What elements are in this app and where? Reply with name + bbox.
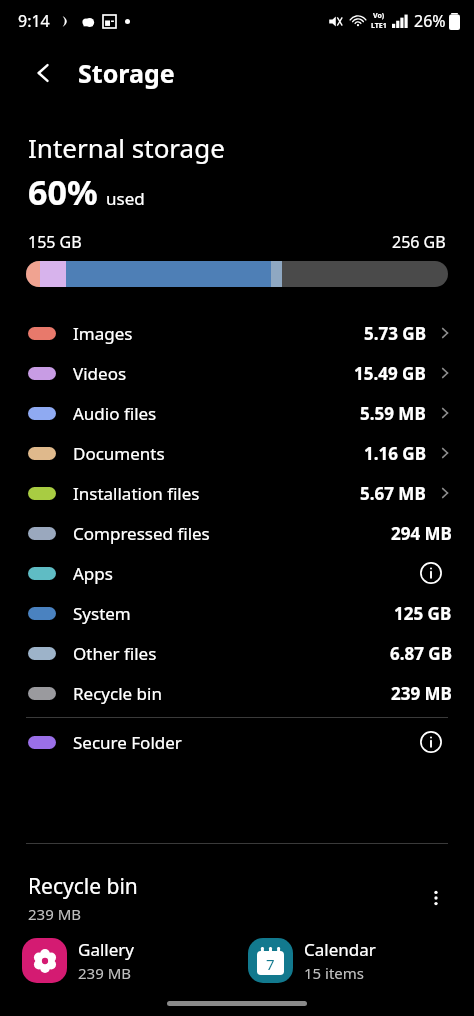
staticText: Installation files bbox=[73, 482, 200, 505]
button[interactable]: Other files bbox=[0, 633, 474, 673]
staticText: Images bbox=[73, 322, 133, 345]
staticText: 239 MB bbox=[391, 682, 452, 705]
button[interactable]: Installation files bbox=[0, 473, 474, 513]
button[interactable]: 7 bbox=[248, 938, 474, 983]
staticText: 60% bbox=[28, 169, 98, 215]
staticText: Other files bbox=[73, 642, 157, 665]
staticText: System bbox=[73, 602, 131, 625]
staticText: 256 GB bbox=[392, 231, 446, 253]
button[interactable]: Documents bbox=[0, 433, 474, 473]
staticText: Calendar bbox=[304, 938, 376, 961]
staticText: 6.87 GB bbox=[390, 642, 452, 665]
staticText: 9:14 bbox=[18, 10, 50, 32]
staticText: 26% bbox=[414, 10, 446, 32]
button[interactable]: Images bbox=[0, 313, 474, 353]
staticText: LTE1 bbox=[371, 21, 387, 31]
staticText: 5.67 MB bbox=[360, 482, 426, 505]
button[interactable]: Apps bbox=[0, 553, 474, 593]
staticText: 15.49 GB bbox=[354, 362, 426, 385]
staticText: Storage bbox=[78, 56, 175, 90]
button[interactable]: Recycle bin bbox=[0, 673, 474, 713]
button[interactable]: Recycle bin bbox=[0, 872, 474, 924]
staticText: 155 GB bbox=[28, 231, 82, 253]
staticText: used bbox=[106, 187, 145, 210]
staticText: Recycle bin bbox=[28, 872, 138, 901]
staticText: Apps bbox=[73, 562, 113, 585]
staticText: Internal storage bbox=[28, 130, 225, 165]
button[interactable]: More options bbox=[416, 878, 456, 918]
button[interactable]: Compressed files bbox=[0, 513, 474, 553]
staticText: 1.16 GB bbox=[364, 442, 426, 465]
button[interactable]: Secure Folder bbox=[0, 722, 474, 762]
staticText: 5.73 GB bbox=[364, 322, 426, 345]
other: More info bbox=[418, 729, 444, 755]
staticText: Videos bbox=[73, 362, 127, 385]
staticText: Audio files bbox=[73, 402, 157, 425]
staticText: 7 bbox=[266, 954, 275, 974]
staticText: Compressed files bbox=[73, 522, 210, 545]
staticText: Recycle bin bbox=[73, 682, 162, 705]
staticText: 239 MB bbox=[78, 963, 131, 983]
button[interactable]: Back bbox=[22, 51, 66, 95]
button[interactable]: Videos bbox=[0, 353, 474, 393]
staticText: 239 MB bbox=[28, 904, 81, 924]
staticText: Documents bbox=[73, 442, 165, 465]
button[interactable]: System bbox=[0, 593, 474, 633]
staticText: Gallery bbox=[78, 938, 134, 961]
staticText: Vo) bbox=[373, 11, 385, 21]
staticText: 5.59 MB bbox=[360, 402, 426, 425]
button[interactable]: Audio files bbox=[0, 393, 474, 433]
staticText: Secure Folder bbox=[73, 731, 182, 754]
other: More info bbox=[418, 560, 444, 586]
button[interactable]: Gallery bbox=[22, 938, 248, 983]
staticText: 15 items bbox=[304, 963, 365, 983]
staticText: 294 MB bbox=[391, 522, 452, 545]
staticText: 125 GB bbox=[394, 602, 452, 625]
